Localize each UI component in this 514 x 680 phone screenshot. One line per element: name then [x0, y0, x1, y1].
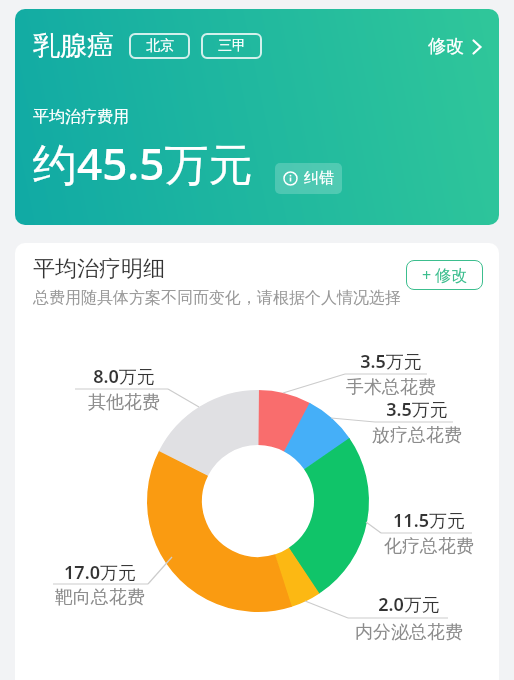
staticText: 靶向总花费	[55, 586, 145, 609]
staticText: 内分泌总花费	[355, 621, 463, 644]
button[interactable]: 修改	[428, 35, 483, 58]
staticText: 放疗总花费	[372, 424, 462, 447]
staticText: 2.0万元	[378, 592, 440, 617]
button[interactable]: 北京	[129, 33, 190, 59]
staticText: 乳腺癌	[33, 29, 114, 63]
button[interactable]: 三甲	[201, 33, 262, 59]
staticText: 纠错	[304, 169, 334, 188]
staticText: 平均治疗费用	[33, 107, 129, 127]
staticText: 北京	[146, 37, 174, 55]
staticText: 11.5万元	[393, 508, 465, 533]
staticText: 3.5万元	[360, 349, 422, 374]
staticText: 修改	[428, 35, 464, 58]
staticText: 其他花费	[88, 391, 160, 414]
staticText: 三甲	[218, 37, 246, 55]
staticText: 8.0万元	[93, 364, 155, 389]
button[interactable]: 纠错	[275, 163, 342, 194]
button[interactable]: + 修改	[406, 260, 483, 290]
staticText: 17.0万元	[64, 560, 136, 585]
staticText: 约45.5万元	[33, 133, 253, 193]
staticText: 3.5万元	[386, 397, 448, 422]
staticText: 手术总花费	[346, 376, 436, 399]
staticText: 平均治疗明细	[33, 255, 165, 283]
staticText: 化疗总花费	[384, 535, 474, 558]
button[interactable]: 乳腺癌	[15, 9, 499, 225]
staticText: 总费用随具体方案不同而变化，请根据个人情况选择	[33, 288, 401, 308]
staticText: + 修改	[422, 264, 468, 286]
